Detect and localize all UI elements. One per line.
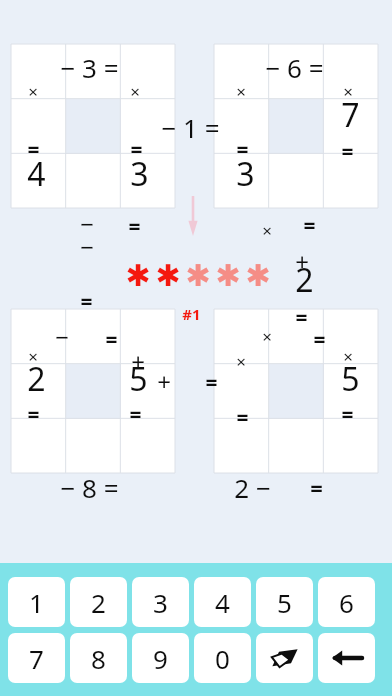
staticText: + — [295, 245, 309, 278]
button[interactable]: 7 — [8, 633, 65, 683]
staticText: ✱ — [155, 258, 181, 293]
staticText: 4 — [215, 585, 230, 620]
staticText: − — [55, 320, 69, 353]
staticText: = — [80, 287, 93, 316]
staticText: 6 — [339, 585, 354, 620]
staticText: 8 — [91, 641, 106, 676]
staticText: = — [128, 212, 141, 241]
staticText: × — [130, 80, 140, 103]
button[interactable]: 6 — [318, 577, 375, 627]
staticText: 3 — [153, 585, 168, 620]
staticText: = — [310, 472, 323, 502]
staticText: + — [131, 345, 145, 378]
staticText: − — [80, 230, 94, 263]
button[interactable]: 2 — [70, 577, 127, 627]
staticText: 0 — [215, 641, 230, 676]
staticText: + — [157, 365, 171, 398]
staticText: 1 — [29, 585, 44, 620]
staticText: 3 — [236, 152, 255, 196]
staticText: 7 — [29, 641, 44, 676]
staticText: = — [129, 400, 142, 429]
staticText: #1 — [182, 304, 201, 324]
staticText: × — [262, 325, 272, 348]
staticText: 2 — [295, 258, 314, 302]
staticText: = — [236, 135, 249, 164]
staticText: = — [27, 400, 40, 429]
button[interactable]: 9 — [132, 633, 189, 683]
staticText: = — [205, 368, 218, 397]
staticText: = — [236, 403, 249, 432]
button[interactable]: 0 — [194, 633, 251, 683]
staticText: 4 — [27, 152, 46, 196]
staticText: = — [130, 135, 143, 164]
staticText: 5 — [277, 585, 292, 620]
staticText: = — [341, 400, 354, 429]
staticText: × — [236, 350, 246, 373]
staticText: ✱ — [245, 258, 271, 293]
button[interactable]: 5 — [256, 577, 313, 627]
button[interactable]: Backspace — [318, 633, 375, 683]
staticText: ✱ — [185, 258, 211, 293]
button[interactable]: 4 — [194, 577, 251, 627]
staticText: 5 — [129, 357, 148, 401]
staticText: = — [27, 135, 40, 164]
staticText: × — [28, 80, 38, 103]
staticText: − 1 = — [161, 110, 220, 145]
staticText: − 3 = — [60, 50, 119, 85]
staticText: = — [105, 325, 118, 354]
button[interactable]: 8 — [70, 633, 127, 683]
staticText: ✱ — [215, 258, 241, 293]
staticText: × — [28, 345, 38, 368]
staticText: × — [236, 80, 246, 103]
staticText: ✱ — [125, 258, 151, 293]
staticText: 7 — [341, 93, 360, 137]
staticText: − 8 = — [60, 470, 119, 505]
staticText: = — [341, 137, 354, 166]
staticText: × — [343, 80, 353, 103]
staticText: − 6 = — [265, 50, 324, 85]
staticText: × — [343, 345, 353, 368]
staticText: 2 — [27, 357, 46, 401]
staticText: = — [303, 211, 316, 240]
staticText: 2 − — [234, 470, 271, 505]
staticText: − — [80, 207, 94, 240]
staticText: 3 — [130, 152, 149, 196]
staticText: 2 — [91, 585, 106, 620]
staticText: × — [262, 219, 272, 242]
staticText: = — [313, 325, 326, 354]
button[interactable]: Erase — [256, 633, 313, 683]
button[interactable]: 1 — [8, 577, 65, 627]
staticText: = — [295, 303, 308, 332]
staticText: 5 — [341, 357, 360, 401]
button[interactable]: 3 — [132, 577, 189, 627]
staticText: 9 — [153, 641, 168, 676]
